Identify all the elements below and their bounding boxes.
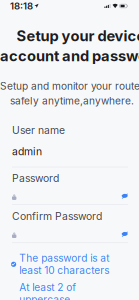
staticText: account and password (0, 47, 139, 65)
staticText: Setup and monitor your router (0, 80, 139, 92)
staticText: At least 2 of uppercase characters/lower… (19, 281, 124, 300)
button[interactable]: Password (12, 167, 128, 205)
staticText: 18:18 (10, 0, 33, 12)
staticText: The password is at least 10 characters (19, 252, 109, 276)
staticText: admin (12, 145, 42, 158)
button[interactable]: Confirm Password (12, 205, 128, 243)
staticText: Password (12, 172, 59, 184)
staticText: safely anytime,anywhere. (10, 95, 134, 107)
staticText: Setup your device (16, 27, 139, 45)
button[interactable]: User name (12, 107, 128, 167)
staticText: User name (12, 124, 65, 137)
staticText: Confirm Password (12, 210, 102, 223)
